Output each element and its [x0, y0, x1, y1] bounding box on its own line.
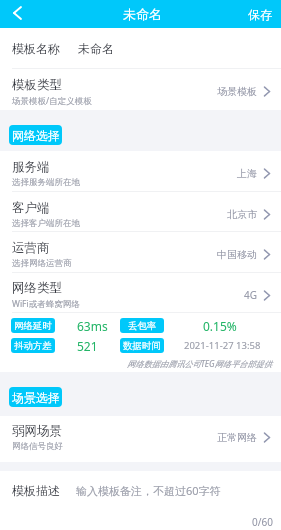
staticText: 2021-11-27 13:58 [184, 339, 261, 352]
staticText: 北京市 [227, 208, 257, 221]
button[interactable]: 模板类型 [0, 69, 281, 110]
staticText: 场景模板/自定义模板 [12, 95, 92, 107]
button[interactable]: 运营商 [0, 232, 281, 273]
staticText: 场景模板 [217, 85, 257, 98]
button[interactable]: 服务端 [0, 151, 281, 192]
button[interactable]: 保存 [237, 0, 281, 28]
staticText: 上海 [237, 167, 257, 180]
staticText: 网络信号良好 [12, 441, 63, 452]
staticText: 运营商 [12, 240, 50, 256]
staticText: 模板描述 [12, 483, 60, 498]
staticText: 未命名 [123, 6, 162, 22]
staticText: 抖动方差 [14, 340, 52, 352]
staticText: 0/60 [252, 515, 273, 529]
staticText: 选择客户端所在地 [12, 218, 80, 229]
staticText: 场景选择 [12, 390, 60, 405]
staticText: 521 [77, 338, 98, 353]
button[interactable]: Back [0, 0, 32, 28]
button[interactable]: 网络类型 [0, 273, 281, 313]
staticText: 服务端 [12, 159, 50, 175]
staticText: 网络类型 [12, 280, 62, 296]
button[interactable]: 客户端 [0, 192, 281, 232]
staticText: 网络选择 [12, 128, 60, 143]
button[interactable]: 弱网场景 [0, 416, 281, 462]
staticText: 模板名称 [12, 41, 60, 56]
staticText: 网络数据由腾讯公司TEG网络平台部提供 [127, 358, 272, 369]
staticText: 未命名 [78, 41, 114, 56]
staticText: 输入模板备注，不超过60字符 [76, 483, 221, 498]
staticText: 网络延时 [14, 320, 52, 332]
staticText: 中国移动 [217, 248, 257, 261]
staticText: 客户端 [12, 200, 50, 216]
staticText: 4G [244, 288, 257, 302]
staticText: 正常网络 [217, 431, 257, 444]
staticText: 数据时间 [123, 340, 161, 352]
staticText: 丢包率 [128, 320, 157, 332]
staticText: 弱网场景 [12, 423, 62, 439]
staticText: 保存 [248, 7, 272, 22]
staticText: 模板类型 [12, 77, 62, 93]
staticText: 0.15% [203, 318, 237, 333]
staticText: 选择服务端所在地 [12, 177, 80, 188]
staticText: WiFi或者蜂窝网络 [12, 298, 80, 310]
button[interactable]: 模板名称 [0, 28, 281, 69]
staticText: 63ms [77, 318, 108, 333]
staticText: 选择网络运营商 [12, 258, 72, 269]
